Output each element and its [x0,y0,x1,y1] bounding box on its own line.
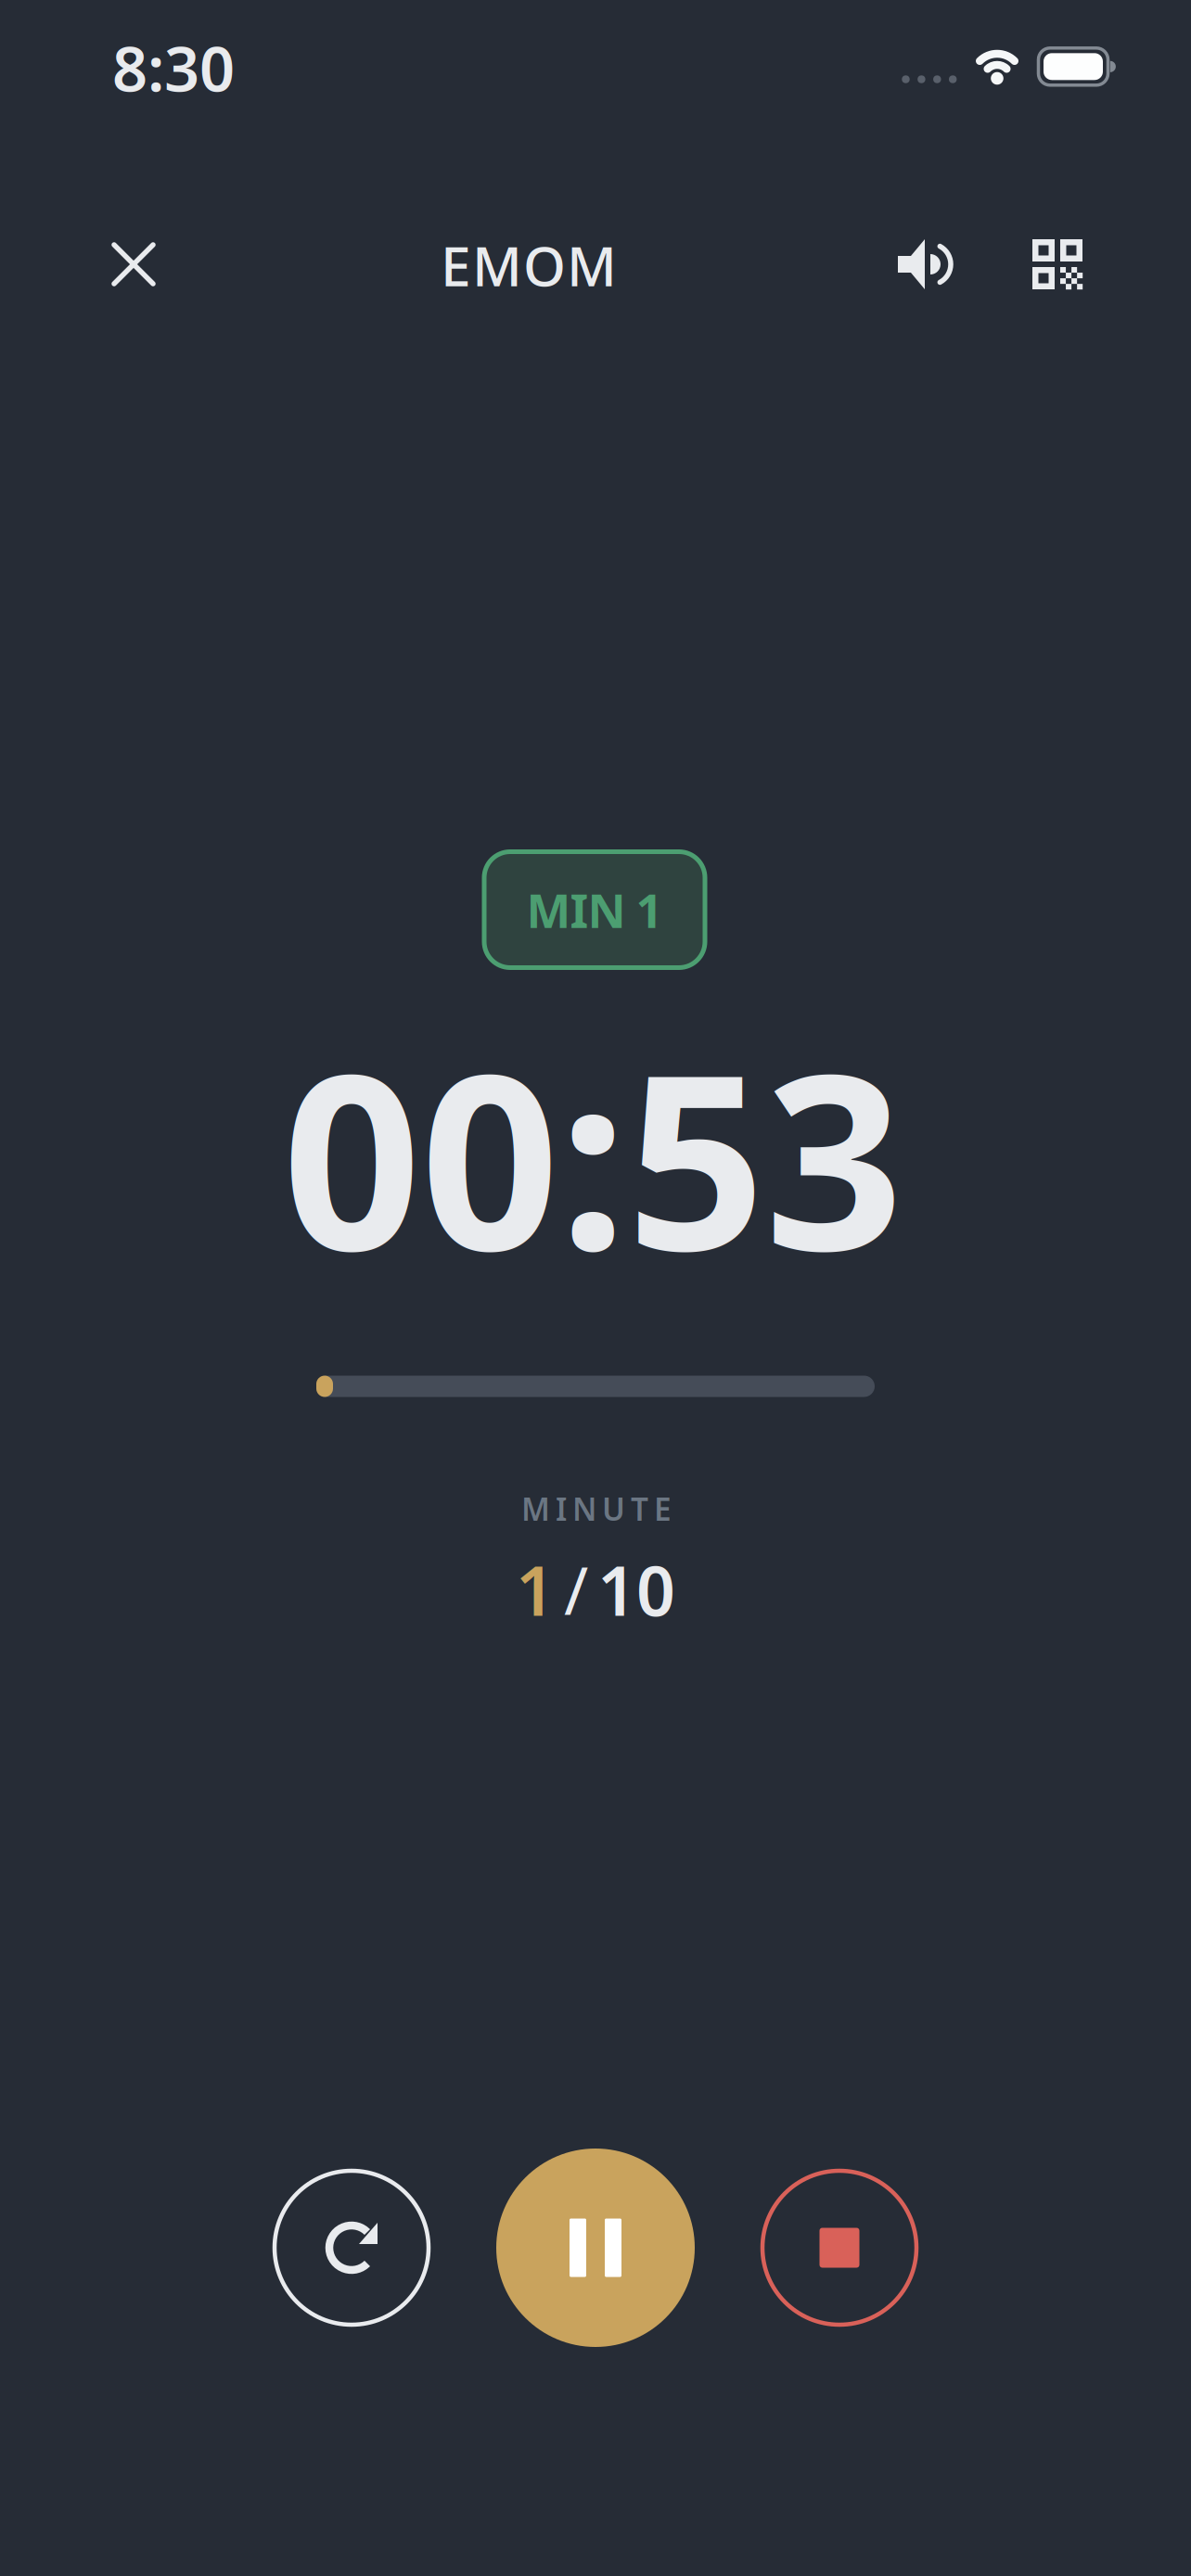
staticText: 10 [597,1544,675,1635]
button[interactable]: Close [101,232,166,297]
staticText: / [564,1546,588,1633]
staticText: 1 [516,1544,555,1635]
staticText: 8:30 [112,27,235,109]
button[interactable]: Stop [762,2171,916,2325]
button[interactable]: Scan QR code [1027,234,1088,295]
staticText: 00:53 [282,995,903,1316]
button[interactable]: Pause [496,2149,695,2347]
button[interactable]: Restart [275,2171,429,2325]
staticText: MIN 1 [526,879,663,941]
staticText: EMOM [441,229,617,301]
staticText: MINUTE [521,1488,672,1529]
button[interactable]: Sound [890,231,957,298]
